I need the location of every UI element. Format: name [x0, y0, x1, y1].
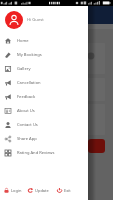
button[interactable]: Update: [25, 181, 51, 200]
button[interactable]: My Bookings: [0, 48, 88, 62]
button[interactable]: Hi Guest: [0, 6, 88, 34]
other: Status bar: [0, 0, 113, 6]
button[interactable]: Home: [0, 34, 88, 48]
button[interactable]: Contact Us: [0, 118, 88, 132]
button[interactable]: Gallery: [0, 62, 88, 76]
button[interactable]: Cancellation: [0, 76, 88, 90]
button[interactable]: Exit: [51, 181, 77, 200]
button[interactable]: Rating And Reviews: [0, 146, 88, 160]
button[interactable]: About Us: [0, 104, 88, 118]
staticText: Home: [17, 38, 29, 44]
staticText: About Us: [17, 108, 35, 114]
staticText: Exit: [64, 188, 71, 193]
button[interactable]: Login: [0, 181, 25, 200]
staticText: My Bookings: [17, 52, 42, 58]
staticText: Contact Us: [17, 122, 38, 128]
staticText: Login: [11, 188, 22, 193]
button[interactable]: Share App: [0, 132, 88, 146]
staticText: Gallery: [17, 66, 31, 72]
button[interactable]: Feedback: [0, 90, 88, 104]
staticText: Cancellation: [17, 80, 41, 86]
staticText: Update: [35, 188, 49, 193]
staticText: Hi Guest: [27, 17, 44, 23]
staticText: Rating And Reviews: [17, 150, 55, 156]
staticText: Feedback: [17, 94, 36, 100]
staticText: Share App: [17, 136, 37, 142]
